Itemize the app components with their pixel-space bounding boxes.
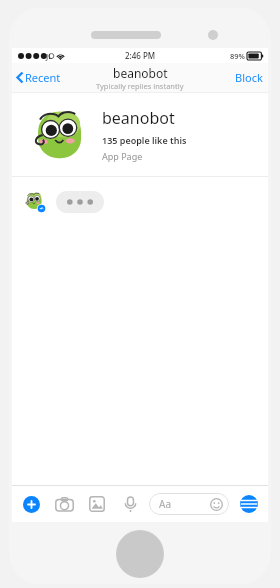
staticText: Aa [159,497,171,511]
button[interactable]: Aa [149,493,229,515]
staticText: 135 people like this [102,134,187,146]
button[interactable]: Recent [12,67,67,88]
staticText: Recent [25,70,61,85]
button[interactable]: More options [236,491,262,517]
button[interactable]: Photos [84,491,110,517]
staticText: Typically replies instantly [96,81,184,91]
staticText: beanobot [102,107,175,129]
staticText: 2:46 PM [125,50,156,61]
button[interactable] [56,191,104,213]
button[interactable]: beanobot [12,93,268,176]
staticText: Block [235,70,263,85]
staticText: JL [46,51,53,61]
button[interactable]: Block [230,66,268,89]
button[interactable]: Voice message [117,491,143,517]
staticText: beanobot [113,65,168,81]
button[interactable]: Add [18,491,44,517]
staticText: 89% [230,51,245,61]
button[interactable]: Camera [51,491,77,517]
staticText: App Page [102,150,143,162]
